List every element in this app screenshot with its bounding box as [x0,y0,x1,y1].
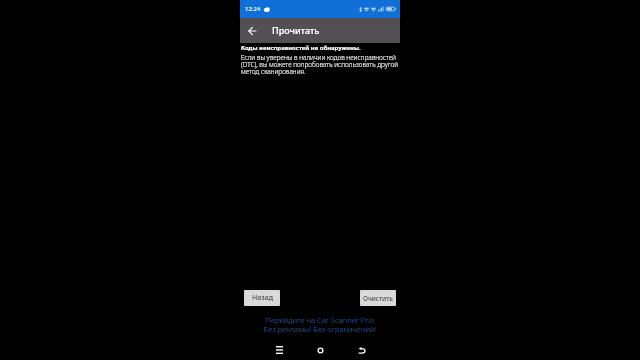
staticText: Если вы уверены в наличии кодов неисправ… [241,53,400,76]
staticText: Назад [252,293,273,303]
button[interactable]: Recents [269,340,289,360]
button[interactable]: Home [310,340,330,360]
button[interactable]: Назад [244,290,280,306]
button[interactable]: Очистить [360,290,396,306]
staticText: Коды неисправностей не обнаружены. [241,44,361,52]
staticText: Прочитать [272,24,320,36]
button[interactable]: Back [244,23,260,39]
staticText: Перейдите на Car Scanner Pro! Без реклам… [240,315,400,334]
button[interactable]: Back [351,340,371,360]
staticText: Очистить [363,294,393,303]
button[interactable]: Перейдите на Car Scanner Pro! Без реклам… [240,315,400,334]
staticText: 12:24 [245,5,261,13]
